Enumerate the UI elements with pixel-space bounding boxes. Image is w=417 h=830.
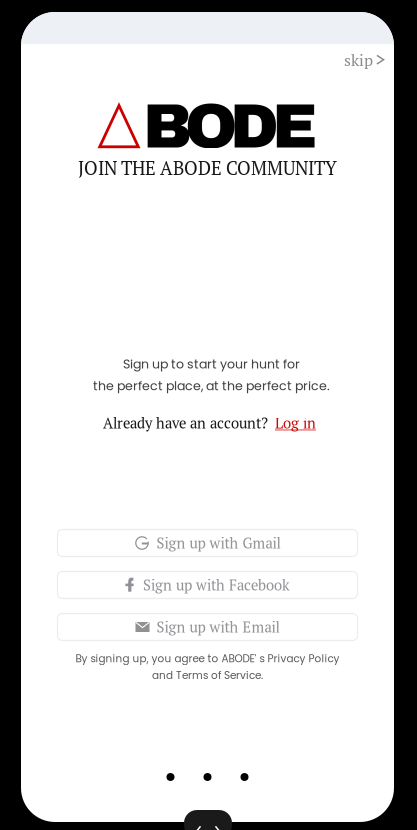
staticText: Sign up to start your hunt for [123,355,300,373]
staticText: skip [344,49,373,71]
button[interactable]: Log in [275,413,316,433]
staticText: BODE [143,92,317,161]
staticText: Log in [275,413,316,433]
button[interactable]: Sign up with Facebook [57,571,357,598]
staticText: and Terms of Service. [152,668,263,683]
staticText: the perfect place, at the perfect price. [93,377,330,394]
staticText: Sign up with Facebook [143,575,290,595]
staticText: Sign up with Email [156,617,279,637]
staticText: Sign up with Gmail [156,533,280,553]
staticText: JOIN THE ABODE COMMUNITY [78,156,337,180]
button[interactable]: Sign up with Email [57,613,357,640]
staticText: Already have an account? [103,413,268,433]
staticText: By signing up, you agree to ABODE' s Pri… [75,651,339,666]
button[interactable]: skip [327,47,385,73]
button[interactable]: Sign up with Gmail [57,529,357,556]
